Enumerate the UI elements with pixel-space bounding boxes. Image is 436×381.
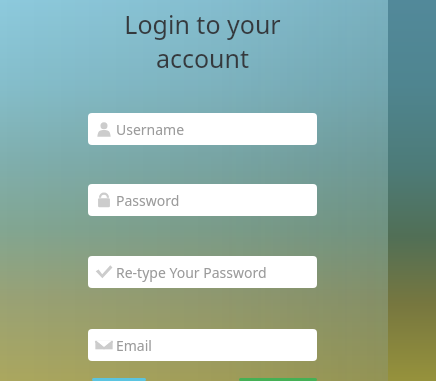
button[interactable]: Sign Up [239, 378, 317, 381]
button[interactable]: Back [92, 378, 146, 381]
staticText: Email [116, 336, 152, 355]
staticText: Login to your account [88, 7, 317, 75]
other: Password [95, 191, 113, 209]
other: Email [95, 336, 113, 354]
button[interactable]: Password [88, 184, 317, 216]
staticText: Password [116, 191, 180, 210]
button[interactable]: Username [88, 113, 317, 145]
button[interactable]: Email [88, 329, 317, 361]
staticText: Username [116, 120, 185, 139]
staticText: Re-type Your Password [116, 263, 267, 282]
other: Username [95, 120, 113, 138]
button[interactable]: Re-type Your Password [88, 256, 317, 288]
other: Re-type Your Password [95, 263, 113, 281]
